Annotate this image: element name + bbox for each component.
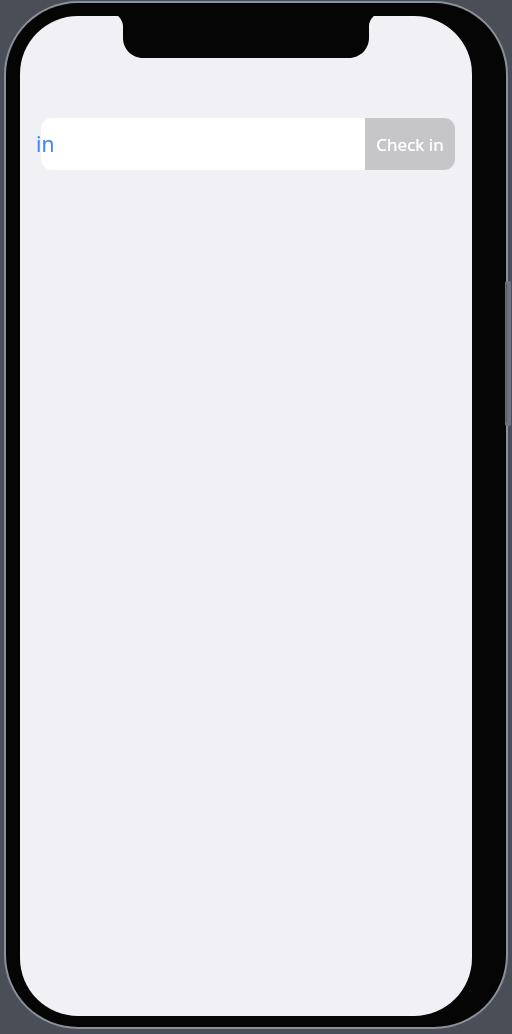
button[interactable]: Check in xyxy=(365,118,455,170)
button[interactable] xyxy=(41,118,365,170)
staticText: in xyxy=(36,130,55,159)
staticText: Check in xyxy=(376,133,444,156)
